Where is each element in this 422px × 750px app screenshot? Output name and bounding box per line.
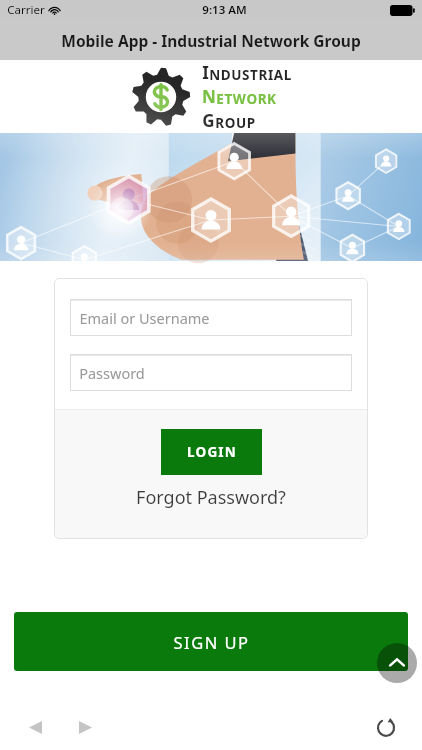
staticText: G [202, 109, 215, 132]
button[interactable]: Password [70, 354, 352, 391]
staticText: LOGIN [187, 443, 237, 461]
staticText: Email or Username [79, 308, 210, 328]
staticText: N [202, 85, 216, 108]
staticText: SIGN UP [173, 631, 250, 653]
button[interactable]: Scroll to top [377, 643, 417, 683]
staticText: I [202, 61, 209, 84]
button[interactable]: Forgot Password? [128, 482, 294, 513]
staticText: Carrier [7, 2, 45, 18]
staticText: 9:13 AM [202, 2, 247, 18]
button[interactable]: Back [20, 712, 50, 742]
staticText: Password [79, 363, 145, 383]
staticText: NDUSTRIAL [209, 66, 292, 84]
staticText: ETWORK [216, 90, 277, 108]
button[interactable]: Email or Username [70, 299, 352, 336]
button[interactable]: LOGIN [161, 429, 262, 475]
button[interactable]: Forward [70, 712, 100, 742]
staticText: Mobile App - Industrial Network Group [61, 30, 361, 51]
staticText: ROUP [215, 114, 256, 132]
button[interactable]: Refresh [370, 711, 402, 743]
staticText: Forgot Password? [136, 485, 286, 510]
button[interactable]: SIGN UP [14, 612, 408, 671]
